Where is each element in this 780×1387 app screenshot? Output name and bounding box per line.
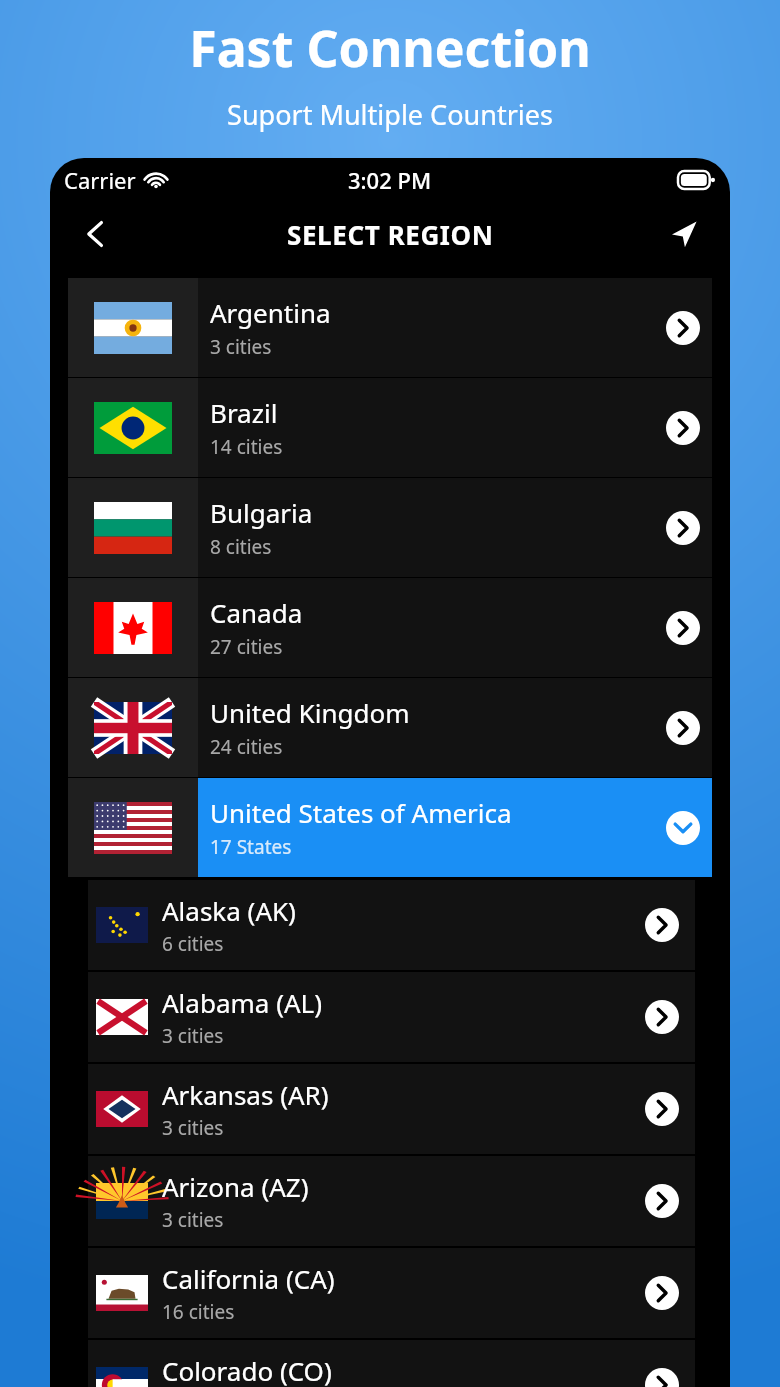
staticText: 3 cities xyxy=(162,1207,224,1233)
button[interactable]: Back xyxy=(72,210,120,258)
staticText: Carrier xyxy=(64,165,136,195)
button[interactable]: Alaska (AK) xyxy=(96,880,679,970)
staticText: 8 cities xyxy=(210,534,272,560)
staticText: Colorado (CO) xyxy=(162,1353,332,1387)
staticText: 6 cities xyxy=(162,931,224,957)
staticText: 3 cities xyxy=(210,334,272,360)
staticText: 3 cities xyxy=(162,1023,224,1049)
button[interactable]: Current location xyxy=(660,210,708,258)
staticText: 14 cities xyxy=(210,434,283,460)
staticText: Arizona (AZ) xyxy=(162,1169,309,1204)
staticText: United States of America xyxy=(210,795,512,830)
staticText: 16 cities xyxy=(162,1299,235,1325)
staticText: 24 cities xyxy=(210,734,283,760)
staticText: 3:02 PM xyxy=(348,165,432,195)
staticText: Bulgaria xyxy=(210,495,313,530)
button[interactable]: Brazil xyxy=(68,378,712,477)
button[interactable]: Arizona (AZ) xyxy=(96,1156,679,1246)
staticText: 17 States xyxy=(210,834,292,860)
staticText: Brazil xyxy=(210,395,278,430)
button[interactable]: United States of America xyxy=(68,778,712,877)
staticText: United Kingdom xyxy=(210,695,410,730)
button[interactable]: Colorado (CO) xyxy=(96,1340,679,1387)
button[interactable]: Arkansas (AR) xyxy=(96,1064,679,1154)
staticText: Fast Connection xyxy=(189,14,591,82)
button[interactable]: Argentina xyxy=(68,278,712,377)
staticText: Canada xyxy=(210,595,303,630)
staticText: Alaska (AK) xyxy=(162,893,296,928)
staticText: Argentina xyxy=(210,295,331,330)
staticText: Arkansas (AR) xyxy=(162,1077,329,1112)
button[interactable]: United Kingdom xyxy=(68,678,712,777)
button[interactable]: Canada xyxy=(68,578,712,677)
staticText: California (CA) xyxy=(162,1261,335,1296)
button[interactable]: Bulgaria xyxy=(68,478,712,577)
button[interactable]: California (CA) xyxy=(96,1248,679,1338)
staticText: Suport Multiple Countries xyxy=(227,96,553,133)
staticText: 3 cities xyxy=(162,1115,224,1141)
staticText: 27 cities xyxy=(210,634,283,660)
button[interactable]: Alabama (AL) xyxy=(96,972,679,1062)
staticText: SELECT REGION xyxy=(287,217,494,252)
staticText: Alabama (AL) xyxy=(162,985,322,1020)
